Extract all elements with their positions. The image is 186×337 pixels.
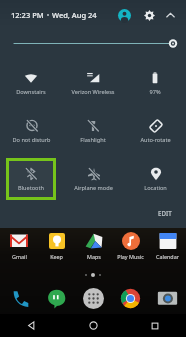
staticText: Verizon Wireless xyxy=(71,88,115,96)
button[interactable]: Play Music xyxy=(112,231,149,260)
button[interactable]: User xyxy=(114,5,134,25)
staticText: Keep xyxy=(50,253,63,260)
staticText: Auto-rotate xyxy=(140,136,171,144)
button[interactable]: Settings xyxy=(139,5,159,25)
staticText: Location xyxy=(144,184,167,192)
button[interactable]: Keep xyxy=(38,231,75,260)
button[interactable]: Auto-rotate xyxy=(130,110,180,152)
staticText: Maps xyxy=(87,253,101,260)
button[interactable]: Brightness xyxy=(0,30,186,56)
button[interactable]: Recents xyxy=(124,314,186,337)
staticText: Do not disturb xyxy=(12,136,51,144)
button[interactable]: Maps xyxy=(75,231,112,260)
staticText: Airplane mode xyxy=(74,184,113,192)
button[interactable]: Back xyxy=(0,314,62,337)
button[interactable]: 97% xyxy=(130,62,180,104)
staticText: Downstairs xyxy=(16,88,46,96)
button[interactable]: Location xyxy=(130,158,180,200)
staticText: 97% xyxy=(149,88,161,96)
button[interactable]: EDIT xyxy=(154,207,176,219)
button[interactable]: Chrome xyxy=(112,282,149,314)
button[interactable]: Apps xyxy=(75,282,112,314)
button[interactable]: Gmail xyxy=(0,231,38,260)
button[interactable]: Flashlight xyxy=(68,110,118,152)
staticText: Gmail xyxy=(12,253,27,260)
button[interactable]: Airplane mode xyxy=(68,158,118,200)
staticText: Wed, Aug 24 xyxy=(52,10,97,20)
button[interactable]: Home xyxy=(62,314,124,337)
button[interactable]: Verizon Wireless xyxy=(68,62,118,104)
button[interactable]: Collapse xyxy=(161,6,179,24)
staticText: Flashlight xyxy=(80,136,106,144)
button[interactable]: Calendar xyxy=(149,231,186,260)
button[interactable]: Downstairs xyxy=(6,62,56,104)
staticText: Bluetooth xyxy=(18,184,44,192)
button[interactable]: Bluetooth xyxy=(9,161,53,197)
button[interactable]: Do not disturb xyxy=(6,110,56,152)
button[interactable]: Hangouts xyxy=(38,282,75,314)
button[interactable]: Phone xyxy=(0,282,38,314)
button[interactable]: Camera xyxy=(149,282,186,314)
staticText: Calendar xyxy=(156,253,179,260)
staticText: 12:23 PM xyxy=(11,10,44,20)
staticText: Play Music xyxy=(117,253,144,260)
staticText: EDIT xyxy=(158,209,172,217)
